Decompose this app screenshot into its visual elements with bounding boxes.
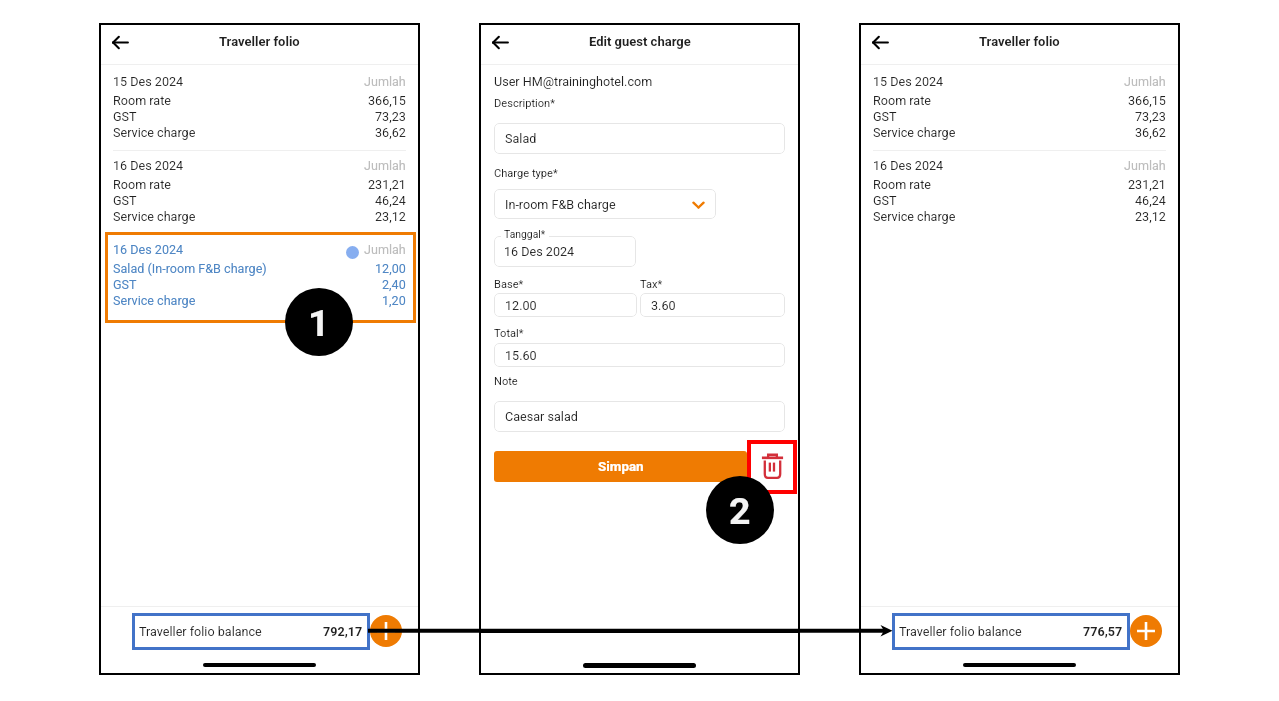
staticText: GST <box>113 277 137 292</box>
staticText: Tanggal* <box>504 228 546 240</box>
button[interactable]: Traveller folio balance <box>892 613 1130 650</box>
staticText: Note <box>494 375 518 388</box>
staticText: 36,62 <box>1135 125 1166 140</box>
staticText: Traveller folio <box>219 34 300 49</box>
staticText: Jumlah <box>364 242 406 257</box>
staticText: 23,12 <box>1135 209 1166 224</box>
staticText: 366,15 <box>1128 93 1166 108</box>
button[interactable]: Add charge <box>1130 615 1162 647</box>
staticText: 16 Des 2024 <box>113 242 184 257</box>
staticText: Caesar salad <box>505 409 578 424</box>
staticText: 36,62 <box>375 125 406 140</box>
staticText: Service charge <box>873 209 956 224</box>
staticText: 15.60 <box>505 348 537 363</box>
button[interactable]: Simpan <box>494 451 747 482</box>
staticText: 2,40 <box>382 277 406 292</box>
staticText: Simpan <box>598 459 644 475</box>
staticText: 16 Des 2024 <box>113 158 184 173</box>
button[interactable]: Back <box>487 29 513 55</box>
staticText: Description* <box>494 97 555 110</box>
staticText: 12,00 <box>375 261 406 276</box>
staticText: User HM@traininghotel.com <box>494 74 653 89</box>
button[interactable]: 16 Des 2024 <box>494 236 636 267</box>
staticText: Jumlah <box>364 74 406 89</box>
staticText: Jumlah <box>1124 158 1166 173</box>
button[interactable]: 16 Des 2024 <box>113 240 406 308</box>
staticText: 2 <box>729 489 751 533</box>
staticText: 73,23 <box>375 109 406 124</box>
staticText: 46,24 <box>375 193 406 208</box>
button[interactable]: Traveller folio balance <box>132 613 370 650</box>
staticText: Service charge <box>113 125 196 140</box>
staticText: Room rate <box>113 177 171 192</box>
staticText: 792,17 <box>323 624 363 639</box>
staticText: 776,57 <box>1083 624 1123 639</box>
staticText: Room rate <box>873 177 931 192</box>
staticText: In-room F&B charge <box>505 197 616 212</box>
button[interactable]: Back <box>867 29 893 55</box>
staticText: 1 <box>308 301 330 345</box>
staticText: Traveller folio <box>979 34 1060 49</box>
staticText: 366,15 <box>368 93 406 108</box>
button[interactable]: 12.00 <box>494 293 637 317</box>
staticText: Room rate <box>113 93 171 108</box>
button[interactable]: 15.60 <box>494 343 785 367</box>
staticText: 16 Des 2024 <box>504 244 575 259</box>
button[interactable]: 3.60 <box>640 293 785 317</box>
staticText: Tax* <box>640 278 663 291</box>
staticText: Edit guest charge <box>589 34 691 49</box>
button[interactable]: Salad <box>494 123 785 154</box>
staticText: Jumlah <box>1124 74 1166 89</box>
staticText: GST <box>113 193 137 208</box>
staticText: Charge type* <box>494 167 558 180</box>
staticText: Salad (In-room F&B charge) <box>113 261 267 276</box>
staticText: 15 Des 2024 <box>113 74 184 89</box>
staticText: 15 Des 2024 <box>873 74 944 89</box>
staticText: 12.00 <box>505 298 537 313</box>
staticText: 231,21 <box>368 177 406 192</box>
staticText: Salad <box>505 131 537 146</box>
staticText: Service charge <box>113 293 196 308</box>
staticText: 231,21 <box>1128 177 1166 192</box>
staticText: Service charge <box>873 125 956 140</box>
button[interactable]: Add charge <box>370 615 402 647</box>
staticText: Jumlah <box>364 158 406 173</box>
button[interactable]: Caesar salad <box>494 401 785 432</box>
staticText: 16 Des 2024 <box>873 158 944 173</box>
staticText: GST <box>873 193 897 208</box>
staticText: Base* <box>494 278 524 291</box>
staticText: 3.60 <box>651 298 676 313</box>
staticText: Traveller folio balance <box>139 624 262 639</box>
staticText: Traveller folio balance <box>899 624 1022 639</box>
staticText: GST <box>873 109 897 124</box>
staticText: Service charge <box>113 209 196 224</box>
staticText: 73,23 <box>1135 109 1166 124</box>
staticText: Total* <box>494 327 524 340</box>
button[interactable]: In-room F&B charge <box>494 189 716 219</box>
button[interactable]: Delete charge <box>747 440 797 494</box>
staticText: 1,20 <box>382 293 406 308</box>
staticText: GST <box>113 109 137 124</box>
button[interactable]: Back <box>107 29 133 55</box>
staticText: 46,24 <box>1135 193 1166 208</box>
staticText: 23,12 <box>375 209 406 224</box>
staticText: Room rate <box>873 93 931 108</box>
